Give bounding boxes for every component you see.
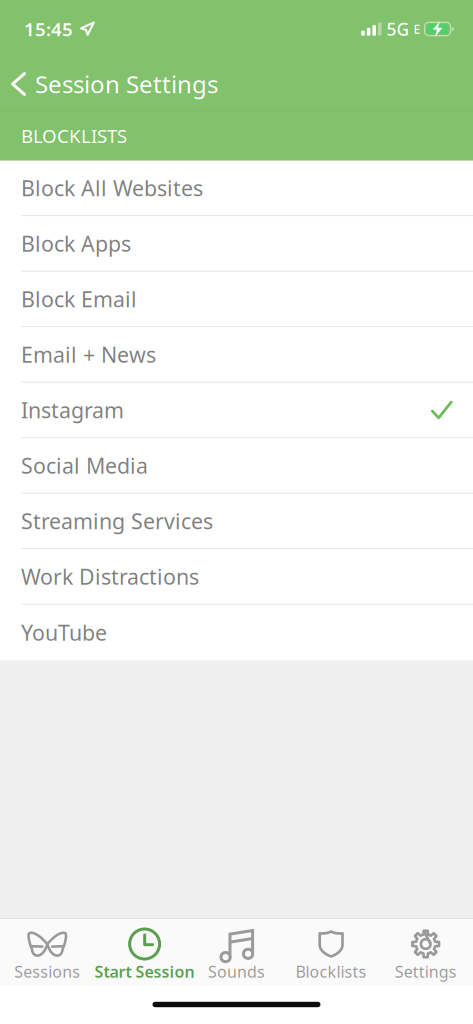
button[interactable]: Instagram	[0, 383, 473, 438]
button[interactable]: Social Media	[0, 438, 473, 494]
staticText: YouTube	[21, 618, 107, 647]
button[interactable]: Streaming Services	[0, 494, 473, 549]
staticText: Session Settings	[35, 68, 218, 100]
button[interactable]: Sounds	[189, 919, 284, 985]
staticText: E	[414, 21, 421, 37]
button[interactable]: Settings	[378, 919, 473, 985]
staticText: Instagram	[21, 396, 124, 424]
staticText: Social Media	[21, 451, 148, 480]
staticText: BLOCKLISTS	[21, 123, 127, 148]
staticText: Sounds	[208, 961, 265, 982]
button[interactable]: Blocklists	[284, 919, 378, 985]
staticText: 5G	[387, 17, 410, 40]
button[interactable]: Start Session	[95, 919, 189, 985]
button[interactable]: Sessions	[0, 919, 95, 985]
staticText: Block Apps	[21, 229, 131, 258]
staticText: Blocklists	[296, 961, 367, 982]
button[interactable]: YouTube	[0, 605, 473, 660]
staticText: Block Email	[21, 285, 137, 313]
staticText: Streaming Services	[21, 507, 213, 535]
button[interactable]: Block Email	[0, 272, 473, 327]
staticText: Sessions	[14, 961, 80, 982]
staticText: Start Session	[95, 961, 195, 982]
staticText: Email + News	[21, 340, 156, 369]
button[interactable]: Work Distractions	[0, 549, 473, 605]
button[interactable]: Session Settings	[0, 62, 218, 106]
button[interactable]: Block All Websites	[0, 161, 473, 216]
button[interactable]: Email + News	[0, 327, 473, 383]
staticText: 15:45	[24, 17, 73, 41]
staticText: Settings	[395, 961, 457, 982]
staticText: Block All Websites	[21, 174, 203, 202]
button[interactable]: Block Apps	[0, 216, 473, 272]
staticText: Work Distractions	[21, 562, 199, 591]
